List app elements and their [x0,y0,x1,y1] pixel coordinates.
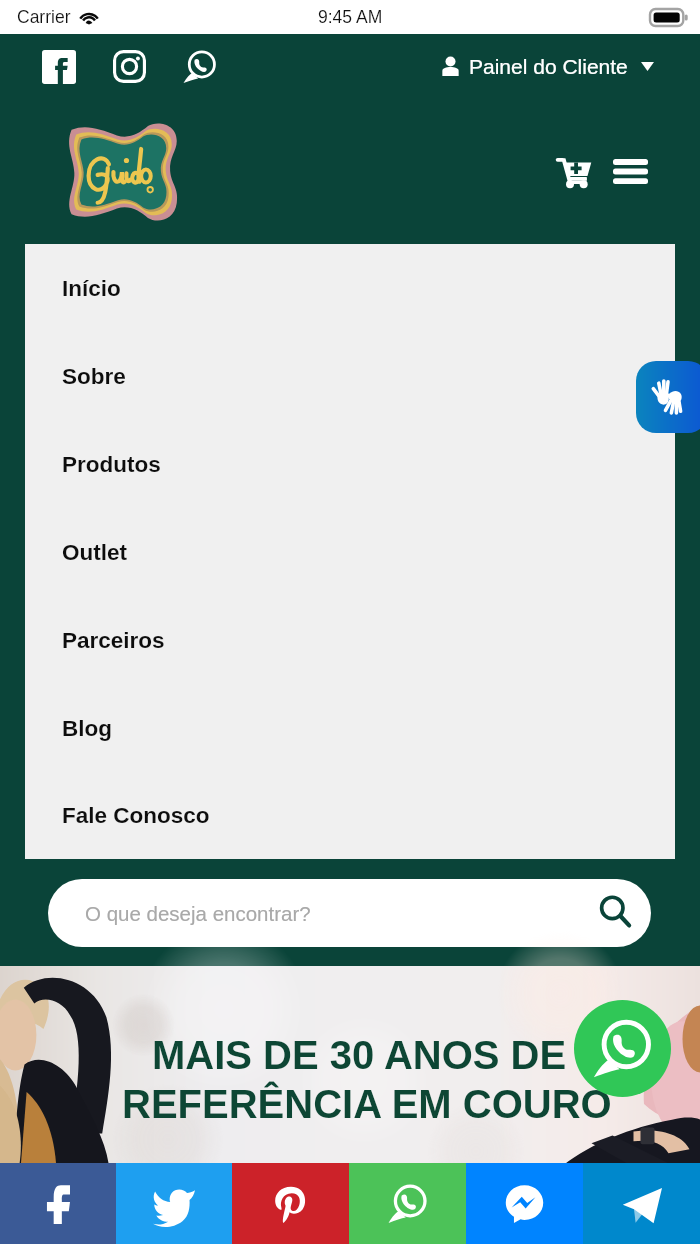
button[interactable]: Sobre [25,332,675,420]
button[interactable]: Blog [25,684,675,772]
button[interactable]: Produtos [25,420,675,508]
button[interactable]: Instagram [113,50,146,83]
staticText: Produtos [62,452,161,477]
button[interactable]: Início [25,244,675,332]
button[interactable]: Share on WhatsApp [349,1163,466,1244]
staticText: Fale Conosco [62,803,210,828]
staticText: Parceiros [62,628,165,653]
staticText: O que deseja encontrar? [85,902,311,925]
button[interactable]: Outlet [25,508,675,596]
button[interactable]: Open menu [607,148,653,194]
button[interactable]: Fale Conosco [25,772,675,859]
button[interactable]: WhatsApp [183,50,217,84]
staticText: Blog [62,716,112,741]
button[interactable]: Share on Messenger [466,1163,583,1244]
staticText: Painel do Cliente [469,55,628,78]
button[interactable]: Parceiros [25,596,675,684]
button[interactable]: Share on Facebook [0,1163,116,1244]
staticText: Outlet [62,540,127,565]
staticText: Carrier [17,7,71,27]
button[interactable]: Share on Pinterest [232,1163,349,1244]
button[interactable]: Facebook [42,50,76,84]
button[interactable]: Chat on WhatsApp [574,1000,671,1097]
staticText: 9:45 AM [318,7,383,27]
staticText: Sobre [62,364,126,389]
staticText: MAIS DE 30 ANOS DE [152,1033,567,1078]
button[interactable]: Painel do Cliente [442,47,654,86]
button[interactable]: Shopping cart [551,148,597,194]
staticText: REFERÊNCIA EM COURO [122,1082,612,1127]
staticText: Início [62,276,121,301]
button[interactable]: Accessibility options [636,361,700,433]
button[interactable]: Share on Telegram [583,1163,700,1244]
button[interactable]: Share on Twitter [116,1163,232,1244]
button[interactable]: O que deseja encontrar? [48,879,651,947]
